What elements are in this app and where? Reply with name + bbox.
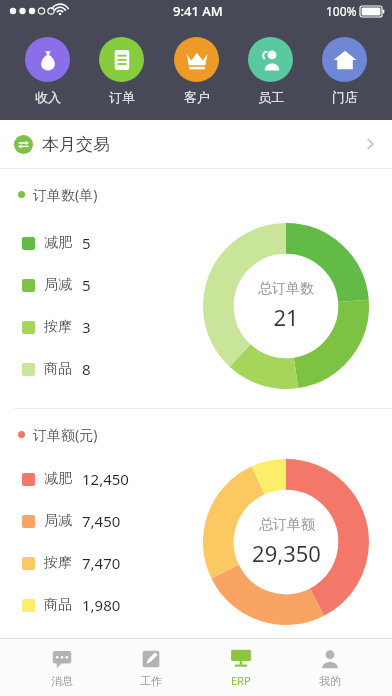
staticText: 工作 [140, 674, 162, 688]
button[interactable]: 订单 [95, 37, 148, 105]
staticText: 100% [326, 3, 357, 19]
staticText: 客户 [184, 89, 210, 105]
staticText: 商品 [44, 360, 72, 378]
staticText: 订单数(单) [33, 185, 98, 204]
staticText: 本月交易 [42, 134, 110, 155]
staticText: 3 [82, 317, 91, 337]
staticText: 订单额(元) [33, 425, 98, 444]
staticText: 员工 [258, 89, 284, 105]
staticText: 减肥 [44, 470, 72, 488]
staticText: 收入 [35, 89, 61, 105]
staticText: 总订单数 [258, 280, 314, 298]
staticText: 门店 [332, 89, 358, 105]
staticText: 12,450 [82, 469, 129, 489]
staticText: 5 [82, 233, 91, 253]
staticText: 9:41 AM [173, 2, 223, 20]
staticText: 29,350 [252, 538, 321, 568]
staticText: 消息 [51, 674, 73, 688]
staticText: 局减 [44, 512, 72, 530]
staticText: ERP [231, 673, 251, 688]
staticText: 商品 [44, 596, 72, 614]
staticText: 7,450 [82, 511, 121, 531]
button[interactable]: 员工 [244, 37, 297, 105]
button[interactable]: ERP [214, 643, 268, 692]
staticText: 按摩 [44, 554, 72, 572]
staticText: 局减 [44, 276, 72, 294]
button[interactable]: 门店 [318, 37, 371, 105]
staticText: 我的 [319, 674, 341, 688]
staticText: 总订单额 [259, 516, 315, 534]
other: More [362, 136, 378, 152]
button[interactable]: 收入 [21, 37, 74, 105]
staticText: 按摩 [44, 318, 72, 336]
staticText: 订单 [109, 89, 135, 105]
staticText: 7,470 [82, 553, 121, 573]
staticText: 21 [273, 302, 299, 332]
button[interactable]: 消息 [35, 644, 89, 692]
button[interactable]: 工作 [124, 644, 178, 692]
staticText: 8 [82, 359, 91, 379]
button[interactable]: 本月交易 [0, 120, 392, 168]
button[interactable]: 客户 [170, 37, 223, 105]
staticText: 5 [82, 275, 91, 295]
staticText: 1,980 [82, 595, 121, 615]
staticText: 减肥 [44, 234, 72, 252]
button[interactable]: 我的 [303, 644, 357, 692]
